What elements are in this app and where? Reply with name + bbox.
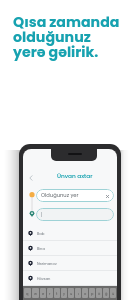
button[interactable]: Back xyxy=(25,171,37,185)
button[interactable]: o xyxy=(82,288,88,298)
button[interactable]: y xyxy=(61,288,67,298)
button[interactable]: t xyxy=(54,288,60,298)
button[interactable]: u xyxy=(68,288,74,298)
staticText: p xyxy=(91,291,94,296)
button[interactable]: q xyxy=(24,288,31,298)
staticText: t xyxy=(56,291,58,296)
button[interactable]: Clear xyxy=(104,193,110,199)
button[interactable]: Olduğunuz yer xyxy=(36,189,114,202)
button[interactable]: Bina xyxy=(23,241,117,256)
staticText: Ünvan axtar xyxy=(57,172,93,180)
staticText: q xyxy=(26,291,29,296)
staticText: y xyxy=(63,291,66,296)
staticText: e xyxy=(42,291,45,296)
staticText: o xyxy=(84,291,87,296)
button[interactable]: Bakı xyxy=(23,226,117,241)
button[interactable]: r xyxy=(47,288,53,298)
staticText: ü xyxy=(112,291,115,296)
staticText: Hövsan xyxy=(37,276,51,281)
staticText: ö xyxy=(98,291,101,296)
button[interactable]: ğ xyxy=(103,288,109,298)
button[interactable]: p xyxy=(89,288,95,298)
staticText: ğ xyxy=(105,291,108,296)
staticText: Qısa zamanda olduğunuz yerə gəlirik. xyxy=(13,12,120,62)
button[interactable] xyxy=(36,208,114,221)
staticText: u xyxy=(70,291,73,296)
button[interactable]: ı xyxy=(75,288,81,298)
button[interactable]: e xyxy=(40,288,46,298)
button[interactable]: Hövsan xyxy=(23,271,117,286)
staticText: Bakı xyxy=(37,231,45,236)
button[interactable]: ü xyxy=(110,288,116,298)
staticText: Nərimanov xyxy=(37,261,57,266)
staticText: w xyxy=(34,291,37,296)
button[interactable]: ö xyxy=(96,288,102,298)
staticText: Olduğunuz yer xyxy=(41,192,79,199)
button[interactable]: Nərimanov xyxy=(23,256,117,271)
staticText: ı xyxy=(78,291,79,296)
staticText: Bina xyxy=(37,246,45,251)
staticText: r xyxy=(49,291,51,296)
button[interactable]: w xyxy=(32,288,39,298)
